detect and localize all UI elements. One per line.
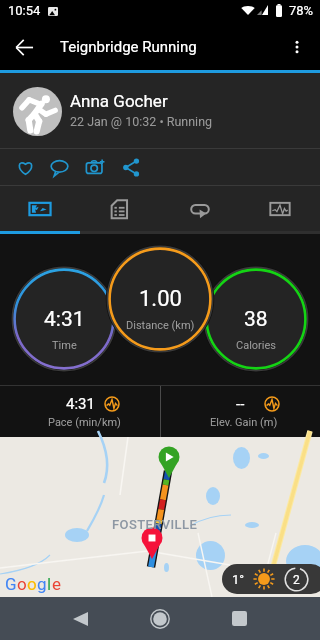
staticText: g (37, 574, 47, 594)
button[interactable]: Back (4, 27, 44, 67)
button[interactable]: Time 4:31 (14, 269, 114, 369)
staticText: o (27, 574, 37, 594)
staticText: G (5, 574, 17, 594)
button[interactable]: More options (277, 27, 317, 67)
staticText: 22 Jan @ 10:32 • Running (70, 114, 213, 129)
button[interactable]: Like (8, 150, 42, 184)
button[interactable]: Pace (min/km) (0, 386, 160, 437)
staticText: 38 (244, 307, 268, 332)
button[interactable]: Elev. Gain (m) (160, 386, 320, 437)
staticText: o (17, 574, 27, 594)
staticText: FOSTERVILLE (112, 517, 198, 532)
button[interactable]: Weather 1 degree (222, 564, 320, 594)
staticText: 10:54 (8, 3, 41, 18)
button[interactable]: Share (114, 150, 148, 184)
staticText: Anna Gocher (70, 91, 168, 111)
staticText: 1.00 (139, 286, 182, 312)
staticText: Calories (236, 339, 277, 352)
button[interactable]: Profile (13, 87, 62, 136)
button[interactable]: Distance 1.00 km (110, 249, 210, 349)
staticText: Teignbridge Running (60, 38, 197, 56)
button[interactable]: Laps (160, 186, 240, 231)
staticText: 78% (289, 3, 314, 18)
button[interactable]: Comment (42, 150, 76, 184)
button[interactable]: Graphs (240, 186, 320, 231)
button[interactable]: Map (0, 186, 80, 231)
button[interactable]: Add photo (78, 150, 112, 184)
button[interactable]: Recent apps (215, 597, 263, 640)
staticText: e (52, 574, 62, 594)
staticText: l (47, 574, 52, 594)
staticText: Time (52, 339, 77, 352)
staticText: -- (236, 395, 245, 413)
staticText: Elev. Gain (m) (210, 416, 278, 429)
staticText: 4:31 (44, 307, 85, 332)
button[interactable]: Back (56, 597, 104, 640)
staticText: Pace (min/km) (48, 416, 121, 429)
staticText: 1° (232, 572, 245, 587)
staticText: 4:31 (66, 395, 95, 413)
button[interactable]: Home (136, 597, 184, 640)
staticText: Distance (km) (126, 319, 195, 332)
button[interactable]: Details (80, 186, 160, 231)
button[interactable]: Calories 38 (206, 269, 306, 369)
staticText: 2 (293, 573, 300, 587)
